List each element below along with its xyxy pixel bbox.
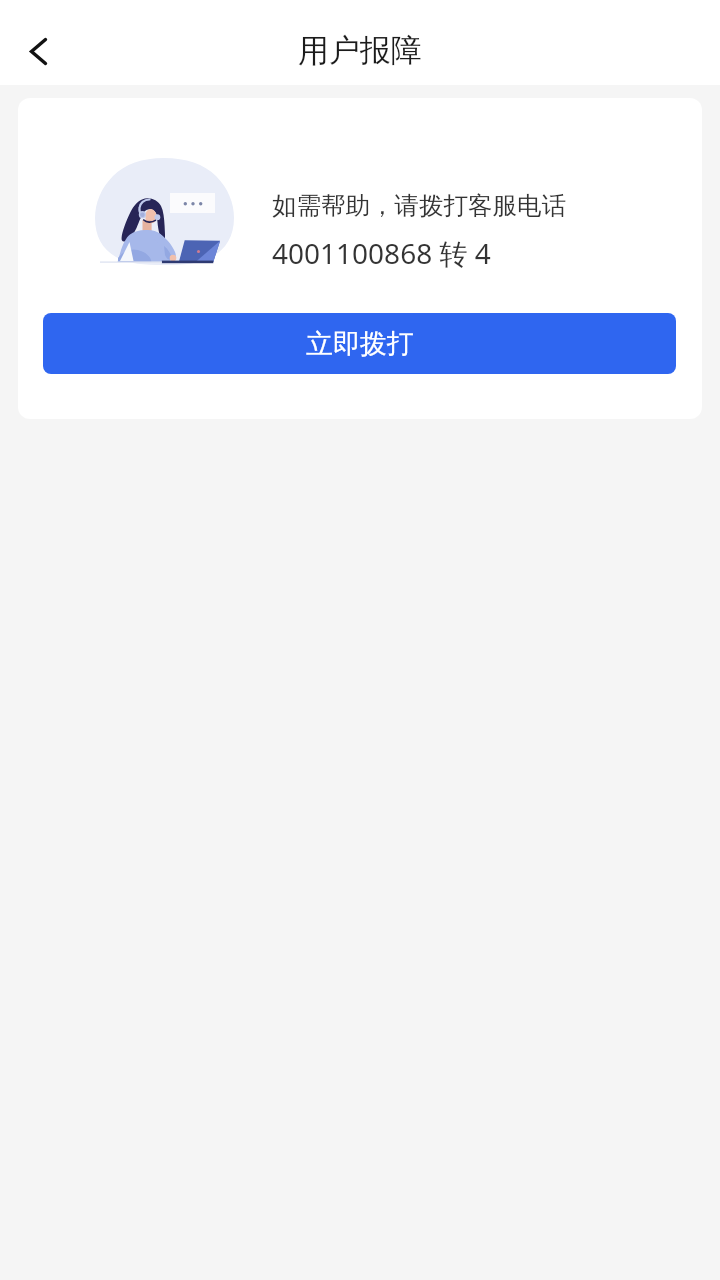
staticText: 立即拨打 (306, 327, 414, 361)
button[interactable]: 立即拨打 (43, 313, 676, 374)
staticText: 如需帮助，请拨打客服电话 (272, 190, 566, 221)
button[interactable]: Back (6, 19, 70, 83)
staticText: 4001100868 转 4 (272, 234, 491, 272)
staticText: 用户报障 (298, 31, 422, 70)
